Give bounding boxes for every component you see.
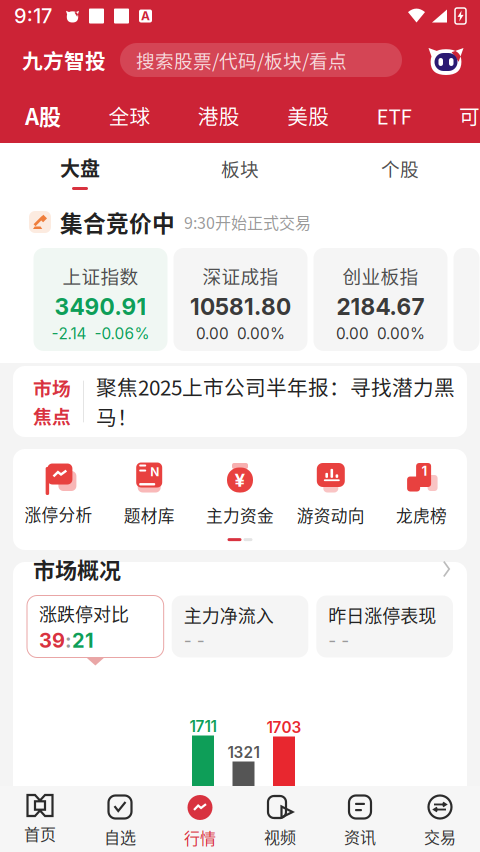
staticText: 9:17 [14, 4, 52, 28]
button[interactable]: 1 [376, 461, 467, 527]
staticText: - - [184, 630, 205, 651]
staticText: 0.00% [237, 324, 285, 343]
staticText: ¥ [234, 469, 245, 491]
button[interactable]: 涨跌停对比 [27, 595, 164, 665]
staticText: 1711 [189, 717, 216, 736]
button[interactable]: 自选 [80, 786, 160, 852]
staticText: 聚焦2025上市公司半年报：寻找潜力黑马！ [96, 372, 455, 431]
staticText: 行情 [184, 826, 216, 849]
button[interactable]: 美股 [287, 100, 329, 130]
staticText: 39 [39, 628, 65, 653]
staticText: 主力净流入 [184, 602, 274, 628]
staticText: 游资动向 [297, 503, 365, 527]
staticText: 自选 [104, 825, 136, 848]
staticText: : [65, 628, 72, 653]
staticText: -2.14 [51, 324, 86, 343]
staticText: 1321 [227, 743, 259, 762]
button[interactable]: 主力净流入 [172, 595, 308, 657]
staticText: 1703 [266, 718, 301, 737]
button[interactable]: 港股 [198, 100, 240, 130]
staticText: 板块 [221, 155, 259, 182]
button[interactable]: 交易 [400, 786, 480, 852]
staticText: N [150, 464, 159, 479]
button[interactable]: 游资动向 [285, 461, 376, 527]
staticText: 美股 [287, 100, 329, 130]
button[interactable]: 创业板指 [313, 248, 447, 351]
staticText: ETF [377, 100, 412, 130]
staticText: 搜索股票/代码/板块/看点 [136, 46, 347, 73]
staticText: 0.00 [336, 324, 369, 343]
staticText: 集合竞价中 [60, 206, 175, 238]
staticText: 昨日涨停表现 [328, 602, 436, 628]
staticText: 交易 [424, 825, 456, 848]
button[interactable]: N [104, 461, 195, 527]
staticText: -0.06% [94, 324, 149, 343]
staticText: 涨停分析 [24, 502, 92, 526]
button[interactable]: 全球 [108, 100, 150, 130]
staticText: 0.00 [196, 324, 229, 343]
staticText: 市场 [33, 374, 71, 401]
staticText: 个股 [381, 155, 419, 182]
staticText: 深证成指 [202, 262, 278, 289]
staticText: 9:30开始正式交易 [184, 210, 311, 234]
staticText: 港股 [198, 100, 240, 130]
button[interactable]: A股 [25, 100, 61, 131]
button[interactable]: 行情 [160, 786, 240, 852]
staticText: 首页 [24, 822, 56, 845]
button[interactable]: 个股 [320, 143, 480, 196]
staticText: 题材库 [124, 503, 175, 527]
button[interactable]: 市场 [13, 366, 467, 437]
button[interactable]: 智能助手 [428, 44, 464, 76]
button[interactable]: 深证成指 [173, 248, 307, 351]
staticText: 10581.80 [190, 293, 291, 320]
button[interactable]: 资讯 [320, 786, 400, 852]
staticText: 全球 [108, 100, 150, 130]
button[interactable]: 首页 [0, 786, 80, 852]
staticText: 龙虎榜 [396, 503, 447, 527]
staticText: 上证指数 [62, 262, 138, 289]
staticText: 资讯 [344, 825, 376, 848]
button[interactable]: 昨日涨停表现 [316, 595, 453, 657]
staticText: 2184.67 [336, 293, 424, 320]
staticText: A股 [25, 100, 61, 131]
staticText: 视频 [264, 825, 296, 848]
staticText: - - [328, 630, 349, 651]
staticText: 市场概况 [33, 553, 121, 585]
button[interactable]: 市场概况 [13, 542, 467, 595]
staticText: 21 [72, 628, 94, 653]
staticText: 大盘 [60, 153, 100, 182]
staticText: 1 [422, 463, 428, 479]
button[interactable]: 视频 [240, 786, 320, 852]
staticText: 3490.91 [54, 293, 146, 320]
staticText: 九方智投 [22, 45, 106, 75]
staticText: 可 [459, 100, 480, 130]
button[interactable]: ¥ [195, 461, 285, 527]
button[interactable]: 大盘 [0, 143, 160, 196]
button[interactable]: 板块 [160, 143, 320, 196]
staticText: 主力资金 [206, 503, 274, 527]
button[interactable]: 搜索股票/代码/板块/看点 [120, 43, 402, 77]
staticText: 0.00% [377, 324, 425, 343]
staticText: 涨跌停对比 [39, 600, 129, 626]
button[interactable]: 可 [459, 100, 480, 130]
button[interactable]: 上证指数 [33, 248, 167, 351]
staticText: 焦点 [33, 402, 71, 429]
staticText: A [141, 9, 150, 23]
button[interactable]: 涨停分析 [13, 462, 104, 526]
staticText: 创业板指 [342, 262, 418, 289]
button[interactable]: ETF [377, 100, 412, 130]
